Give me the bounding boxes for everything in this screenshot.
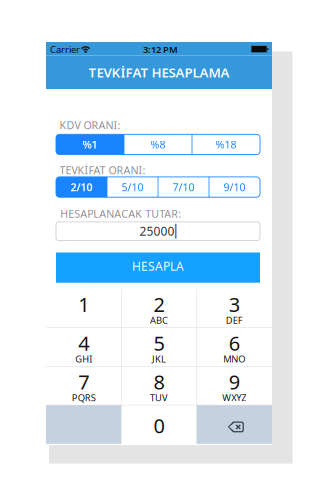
staticText: 5/10 [121, 180, 143, 194]
staticText: 4 [78, 330, 89, 356]
staticText: TEVKİFAT ORANI: [59, 163, 145, 177]
staticText: 7/10 [172, 180, 194, 194]
button[interactable]: 2/10 [56, 177, 107, 197]
staticText: TEVKİFAT HESAPLAMA [88, 63, 229, 81]
staticText: HESAPLANACAK TUTAR: [60, 206, 181, 221]
staticText: %1 [82, 137, 97, 152]
staticText: 7 [78, 368, 89, 395]
staticText: 0 [153, 412, 164, 439]
staticText: 6 [229, 330, 240, 356]
staticText: JKL [152, 353, 166, 365]
button[interactable]: Blank [0, 0, 320, 480]
button[interactable]: Delete [0, 0, 320, 480]
button[interactable]: 9 [197, 366, 272, 405]
button[interactable]: 3 [197, 289, 272, 328]
button[interactable]: 1 [46, 289, 121, 328]
button[interactable]: 4 [46, 328, 121, 366]
staticText: 2/10 [70, 180, 92, 194]
staticText: MNO [223, 353, 245, 365]
staticText: 9 [229, 368, 240, 395]
staticText: GHI [75, 353, 92, 365]
staticText: KDV ORANI: [59, 118, 120, 132]
staticText: 1 [78, 291, 89, 317]
staticText: 5 [153, 330, 164, 356]
button[interactable]: %8 [124, 134, 192, 155]
staticText: 9/10 [223, 180, 245, 194]
staticText: HESAPLA [132, 258, 184, 274]
button[interactable]: 7/10 [158, 177, 209, 197]
staticText: 2 [153, 291, 164, 317]
staticText: TUV [150, 391, 168, 404]
staticText: 8 [153, 368, 164, 395]
button[interactable]: 5 [121, 328, 197, 366]
staticText: 3 [229, 291, 240, 317]
button[interactable]: 2 [121, 289, 197, 328]
button[interactable]: 6 [197, 328, 272, 366]
staticText: WXYZ [222, 391, 246, 404]
staticText: ABC [150, 314, 168, 326]
button[interactable]: 5/10 [107, 177, 158, 197]
button[interactable]: %1 [56, 134, 124, 155]
staticText: %18 [215, 137, 236, 152]
button[interactable]: HESAPLA [0, 0, 320, 480]
button[interactable]: 8 [121, 366, 197, 405]
staticText: %8 [150, 137, 165, 152]
button[interactable]: 0 [121, 405, 197, 444]
button[interactable]: %18 [192, 134, 260, 155]
button[interactable]: 7 [46, 366, 121, 405]
staticText: 25000 [139, 223, 174, 239]
button[interactable]: 9/10 [209, 177, 260, 197]
staticText: Carrier [50, 43, 80, 55]
staticText: PQRS [72, 391, 96, 404]
staticText: 3:12 PM [143, 43, 178, 56]
staticText: DEF [226, 314, 243, 326]
